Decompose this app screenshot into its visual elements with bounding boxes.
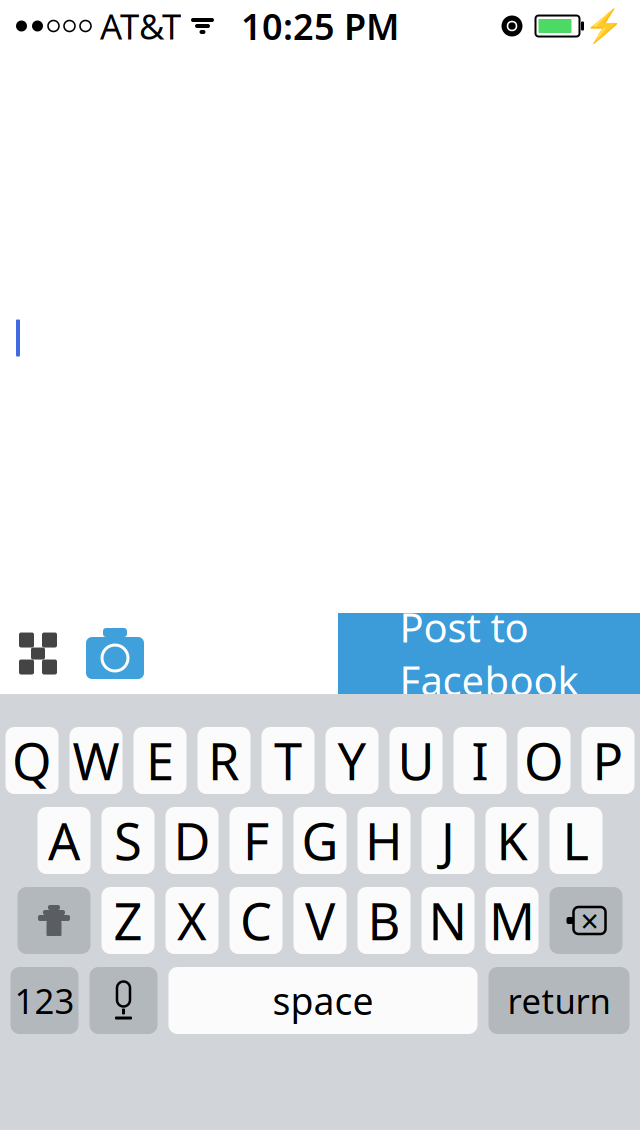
button[interactable]: S: [101, 807, 154, 874]
staticText: X: [177, 887, 207, 954]
staticText: E: [146, 727, 174, 794]
button[interactable]: return: [488, 967, 629, 1034]
staticText: S: [114, 807, 142, 874]
button[interactable]: H: [357, 807, 410, 874]
button[interactable]: Shift: [17, 887, 90, 954]
staticText: O: [524, 727, 564, 794]
staticText: B: [367, 887, 400, 954]
staticText: Z: [113, 887, 142, 954]
button[interactable]: K: [485, 807, 538, 874]
button[interactable]: M: [485, 887, 538, 954]
staticText: W: [72, 727, 119, 794]
button[interactable]: F: [229, 807, 282, 874]
staticText: Q: [12, 727, 52, 794]
button[interactable]: I: [453, 727, 506, 794]
staticText: P: [592, 727, 623, 794]
staticText: Y: [337, 727, 366, 794]
staticText: I: [471, 727, 488, 794]
staticText: space: [272, 976, 373, 1025]
staticText: U: [397, 727, 434, 794]
button[interactable]: Post to Facebook: [338, 613, 640, 694]
button[interactable]: Q: [5, 727, 58, 794]
staticText: K: [496, 807, 527, 874]
staticText: ×: [580, 899, 598, 942]
staticText: D: [173, 807, 210, 874]
button[interactable]: Z: [101, 887, 154, 954]
staticText: C: [240, 887, 272, 954]
button[interactable]: P: [581, 727, 634, 794]
staticText: 10:25 PM: [241, 2, 399, 50]
button[interactable]: space: [168, 967, 477, 1034]
button[interactable]: Close: [0, 613, 76, 694]
button[interactable]: Add photo: [76, 613, 154, 694]
button[interactable]: Y: [325, 727, 378, 794]
staticText: N: [428, 887, 467, 954]
button[interactable]: A: [37, 807, 90, 874]
staticText: Post to Facebook: [399, 600, 578, 707]
button[interactable]: J: [421, 807, 474, 874]
button[interactable]: R: [197, 727, 250, 794]
staticText: return: [507, 977, 610, 1023]
button[interactable]: 123: [10, 967, 78, 1034]
staticText: V: [305, 887, 335, 954]
button[interactable]: N: [421, 887, 474, 954]
button[interactable]: E: [133, 727, 186, 794]
button[interactable]: U: [389, 727, 442, 794]
staticText: A: [48, 807, 80, 874]
button[interactable]: O: [517, 727, 570, 794]
staticText: M: [489, 887, 535, 954]
button[interactable]: C: [229, 887, 282, 954]
staticText: L: [562, 807, 589, 874]
staticText: ⚡: [584, 8, 624, 44]
staticText: 123: [14, 977, 74, 1023]
staticText: G: [301, 807, 338, 874]
staticText: J: [441, 807, 455, 874]
staticText: T: [274, 727, 302, 794]
button[interactable]: G: [293, 807, 346, 874]
staticText: AT&T: [100, 3, 181, 49]
button[interactable]: T: [261, 727, 314, 794]
staticText: F: [243, 807, 269, 874]
staticText: H: [365, 807, 403, 874]
button[interactable]: D: [165, 807, 218, 874]
staticText: R: [208, 727, 240, 794]
button[interactable]: Dictate: [89, 967, 157, 1034]
button[interactable]: Delete: [549, 887, 622, 954]
button[interactable]: W: [69, 727, 122, 794]
button[interactable]: V: [293, 887, 346, 954]
button[interactable]: X: [165, 887, 218, 954]
button[interactable]: B: [357, 887, 410, 954]
button[interactable]: L: [549, 807, 602, 874]
